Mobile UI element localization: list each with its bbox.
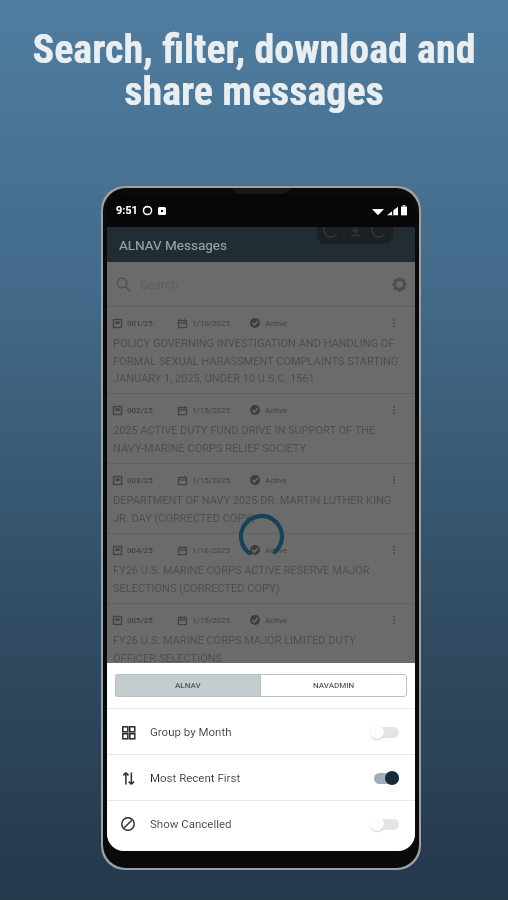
button[interactable]: 002/25 [107, 394, 415, 463]
staticText: 1/15/2025 [192, 476, 231, 485]
button[interactable]: Refresh [319, 218, 343, 242]
staticText: 1/10/2025 [192, 319, 231, 328]
button[interactable]: Toggle [370, 769, 399, 787]
staticText: 1/16/2025 [192, 546, 231, 555]
staticText: ALNAV Messages [119, 237, 227, 253]
button[interactable]: 001/25 [107, 307, 415, 393]
button[interactable]: More options [367, 218, 391, 242]
button[interactable]: Group by Month [107, 709, 415, 754]
staticText: Show Cancelled [150, 817, 232, 830]
staticText: 9:51 [116, 204, 138, 217]
staticText: 002/25 [127, 406, 153, 415]
staticText: Active [265, 476, 288, 485]
button[interactable]: Settings [387, 272, 411, 296]
button[interactable]: 005/25 [107, 604, 415, 673]
staticText: DEPARTMENT OF NAVY 2025 DR. MARTIN LUTHE… [113, 494, 401, 524]
staticText: 1/15/2025 [192, 406, 231, 415]
button[interactable]: More [387, 543, 401, 557]
button[interactable]: Download [343, 218, 367, 242]
staticText: 004/25 [127, 546, 153, 555]
staticText: Active [265, 406, 288, 415]
button[interactable]: Toggle [370, 723, 399, 741]
button[interactable]: 003/25 [107, 464, 415, 533]
button[interactable]: More [387, 403, 401, 417]
button[interactable]: More [387, 473, 401, 487]
button[interactable]: ALNAV [115, 674, 260, 697]
staticText: ALNAV [175, 681, 201, 690]
staticText: Search, filter, download and share messa… [0, 26, 508, 115]
staticText: 003/25 [127, 476, 153, 485]
button[interactable]: More [387, 316, 401, 330]
staticText: FY26 U.S. MARINE CORPS MAJOR LIMITED DUT… [113, 634, 401, 664]
staticText: Search [140, 277, 179, 292]
staticText: Active [265, 616, 288, 625]
button[interactable]: More [387, 613, 401, 627]
staticText: 005/25 [127, 616, 153, 625]
staticText: POLICY GOVERNING INVESTIGATION AND HANDL… [113, 337, 401, 384]
staticText: NAVADMIN [313, 681, 355, 690]
button[interactable]: Show Cancelled [107, 801, 415, 846]
staticText: FY26 U.S. MARINE CORPS ACTIVE RESERVE MA… [113, 564, 401, 594]
staticText: 001/25 [127, 319, 153, 328]
staticText: Most Recent First [150, 771, 241, 784]
staticText: 1/15/2025 [192, 616, 231, 625]
staticText: Active [265, 546, 288, 555]
button[interactable]: 004/25 [107, 534, 415, 603]
button[interactable]: Most Recent First [107, 755, 415, 800]
staticText: 2025 ACTIVE DUTY FUND DRIVE IN SUPPORT O… [113, 424, 401, 454]
staticText: Group by Month [150, 725, 232, 738]
button[interactable]: NAVADMIN [261, 674, 407, 697]
button[interactable]: Toggle [370, 815, 399, 833]
staticText: Active [265, 319, 288, 328]
